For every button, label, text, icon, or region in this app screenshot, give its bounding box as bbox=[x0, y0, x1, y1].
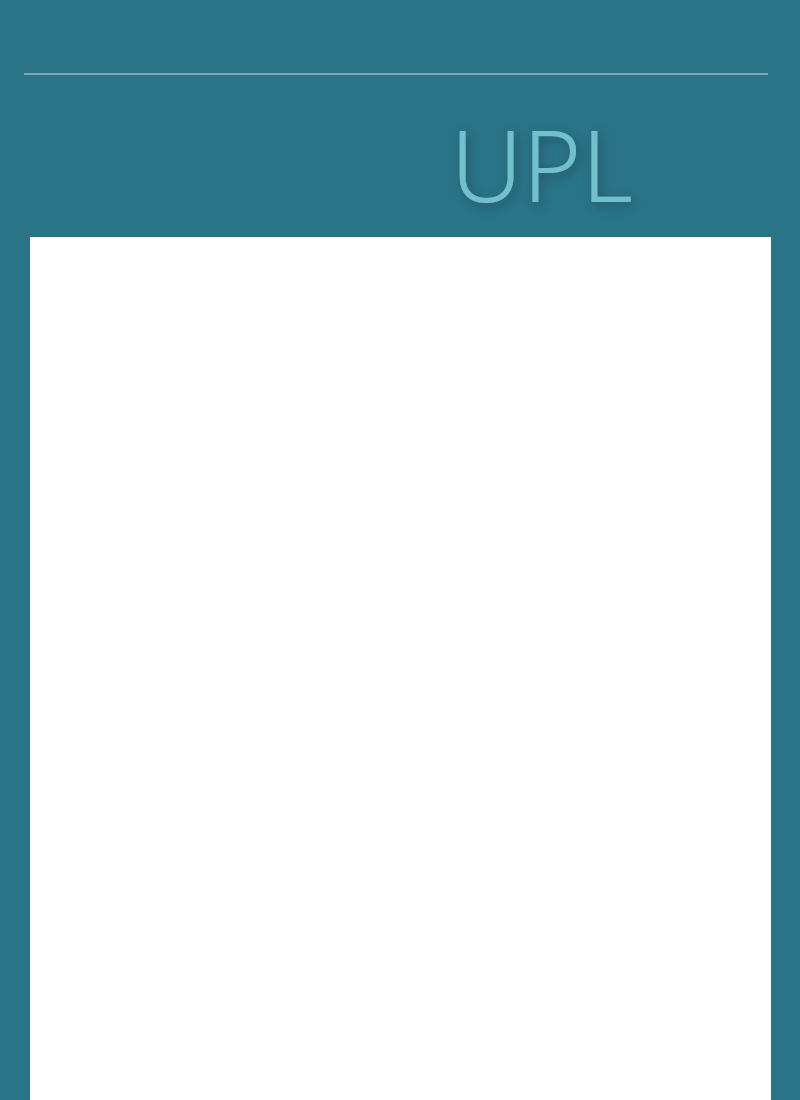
button[interactable]: UPL bbox=[0, 75, 800, 237]
staticText: UPL bbox=[450, 95, 633, 231]
